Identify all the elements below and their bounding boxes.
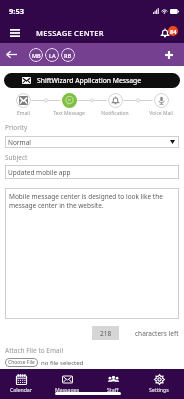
staticText: Voice Mail bbox=[149, 110, 173, 117]
button[interactable]: Voice Mail bbox=[138, 93, 184, 117]
staticText: Choose File bbox=[8, 359, 35, 366]
button[interactable]: RB bbox=[61, 48, 75, 62]
staticText: Priority bbox=[5, 123, 28, 132]
button[interactable]: Updated mobile app bbox=[5, 165, 179, 179]
staticText: RB bbox=[64, 52, 72, 59]
button[interactable]: Notifications bbox=[157, 25, 173, 41]
staticText: Normal bbox=[8, 138, 31, 147]
button[interactable]: Email bbox=[0, 93, 46, 117]
staticText: Messages bbox=[55, 386, 80, 393]
button[interactable]: Back bbox=[4, 47, 19, 62]
staticText: Staff bbox=[107, 386, 119, 393]
staticText: characters left bbox=[135, 329, 179, 338]
button[interactable]: Notification bbox=[92, 93, 138, 117]
staticText: ShiftWizard Application Message bbox=[37, 76, 142, 85]
button[interactable]: Staff bbox=[92, 369, 138, 399]
staticText: 9:53 bbox=[9, 6, 24, 16]
button[interactable]: Menu bbox=[8, 26, 22, 40]
staticText: 84 bbox=[170, 28, 177, 35]
staticText: LA bbox=[49, 52, 56, 59]
staticText: Text Message bbox=[53, 110, 85, 117]
button[interactable]: Settings bbox=[138, 369, 184, 399]
staticText: Calendar bbox=[10, 386, 32, 393]
staticText: Subject bbox=[5, 153, 28, 162]
staticText: MESSAGE CENTER bbox=[36, 28, 104, 38]
button[interactable]: Add bbox=[163, 49, 175, 61]
staticText: 218 bbox=[100, 329, 112, 338]
button[interactable]: Normal bbox=[5, 136, 179, 148]
staticText: Settings bbox=[149, 386, 169, 393]
button[interactable]: Messages bbox=[46, 369, 92, 399]
button[interactable]: LA bbox=[45, 48, 59, 62]
staticText: no file selected bbox=[41, 359, 84, 367]
button[interactable]: Text Message bbox=[46, 93, 92, 117]
button[interactable]: Calendar bbox=[0, 369, 46, 399]
staticText: Email bbox=[17, 110, 30, 117]
button[interactable]: Choose File bbox=[5, 358, 38, 367]
staticText: Mobile message center is designed to loo… bbox=[9, 192, 171, 210]
staticText: Attach File to Email bbox=[5, 346, 64, 355]
button[interactable]: ShiftWizard Application Message bbox=[4, 73, 180, 88]
staticText: Notification bbox=[101, 110, 129, 117]
staticText: Updated mobile app bbox=[8, 168, 71, 177]
staticText: MB bbox=[32, 52, 41, 59]
button[interactable]: MB bbox=[29, 48, 43, 62]
button[interactable]: Mobile message center is designed to loo… bbox=[5, 188, 179, 319]
